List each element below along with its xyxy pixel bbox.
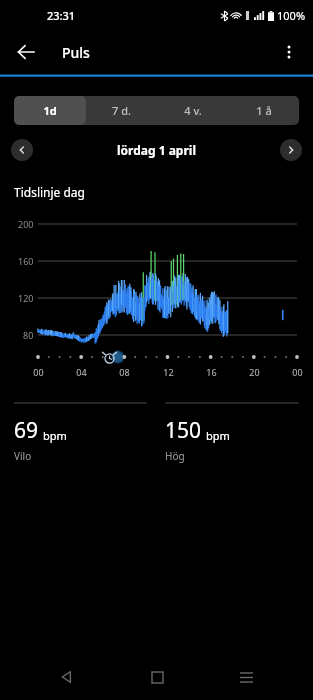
staticText: 7 d. [112, 103, 131, 118]
staticText: 4 v. [184, 103, 202, 118]
staticText: 200 [18, 218, 34, 230]
staticText: 16 [206, 366, 217, 378]
button[interactable]: 7 d. [86, 96, 157, 125]
staticText: 1 å [256, 103, 272, 118]
button[interactable]: Previous day [11, 139, 33, 161]
staticText: bpm [206, 428, 230, 443]
button[interactable]: 150 [165, 403, 299, 463]
staticText: Puls [62, 43, 90, 62]
staticText: 00 [33, 366, 44, 378]
staticText: 00 [292, 366, 303, 378]
staticText: 100% [277, 8, 306, 23]
button[interactable]: More options [271, 34, 307, 70]
staticText: 08 [119, 366, 130, 378]
staticText: 80 [23, 329, 34, 341]
staticText: 12 [163, 366, 174, 378]
button[interactable]: Back [8, 34, 44, 70]
button[interactable]: Home [134, 654, 180, 700]
staticText: Vilo [14, 449, 32, 463]
button[interactable]: 69 [14, 403, 147, 463]
staticText: 04 [76, 366, 87, 378]
staticText: 120 [18, 292, 34, 304]
staticText: 23:31 [47, 8, 76, 23]
staticText: 20 [249, 366, 260, 378]
staticText: Hög [165, 449, 185, 463]
button[interactable]: Recent apps [223, 654, 269, 700]
staticText: 160 [18, 255, 34, 267]
staticText: Tidslinje dag [14, 184, 85, 200]
button[interactable]: 4 v. [157, 96, 228, 125]
staticText: lördag 1 april [117, 142, 196, 158]
staticText: 1d [43, 103, 57, 118]
staticText: bpm [43, 428, 67, 443]
staticText: 150 [165, 416, 202, 445]
button[interactable]: Alarm [101, 349, 118, 366]
button[interactable]: Next day [280, 139, 302, 161]
button[interactable]: 1d [14, 96, 86, 125]
button[interactable]: Back [44, 654, 90, 700]
staticText: 69 [14, 416, 39, 445]
button[interactable]: 1 å [228, 96, 299, 125]
